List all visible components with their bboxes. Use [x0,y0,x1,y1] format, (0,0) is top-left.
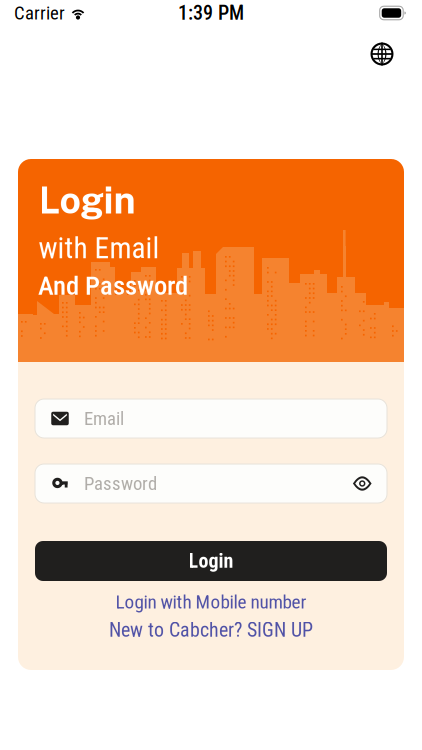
staticText: Email [84,408,124,429]
button[interactable]: New to Cabcher? SIGN UP [35,618,387,642]
staticText: And Password [38,270,188,301]
staticText: with Email [38,231,159,265]
staticText: Login [188,549,233,573]
staticText: New to Cabcher? SIGN UP [109,618,313,642]
staticText: Carrier [14,2,65,24]
button[interactable]: Change language [361,33,403,75]
button[interactable]: Login [35,541,387,581]
staticText: 1:39 PM [178,1,244,25]
staticText: Login with Mobile number [115,591,306,613]
button[interactable]: Login with Mobile number [35,590,387,614]
staticText: Password [84,473,157,494]
staticText: Login [38,178,135,222]
